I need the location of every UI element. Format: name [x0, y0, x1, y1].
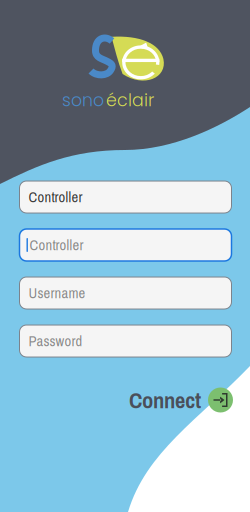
staticText: Username [28, 283, 85, 303]
staticText: éclair [106, 88, 154, 112]
button[interactable]: Connect [129, 383, 233, 417]
staticText: Controller [29, 235, 83, 255]
staticText: sono [62, 88, 104, 112]
staticText: Controller [28, 187, 82, 207]
button[interactable]: Username [19, 277, 231, 309]
button[interactable]: Controller [19, 229, 231, 261]
button[interactable]: Controller [19, 181, 231, 213]
button[interactable]: Password [19, 325, 231, 357]
staticText: Connect [129, 385, 201, 415]
staticText: Password [28, 331, 82, 351]
